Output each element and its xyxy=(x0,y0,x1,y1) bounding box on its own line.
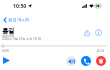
button[interactable]: Play xyxy=(0,54,13,67)
button[interactable]: Contact info xyxy=(94,28,103,37)
staticText: -0:14 xyxy=(96,48,104,53)
button[interactable]: 음성 메시지 xyxy=(0,15,31,24)
staticText: 0:00 xyxy=(2,48,9,53)
button[interactable]: Speaker xyxy=(66,56,76,66)
staticText: 2020년 9월 27일 오후 10:18 xyxy=(2,37,41,41)
button[interactable]: Share voicemail xyxy=(82,28,91,37)
staticText: 홍길 xyxy=(2,27,15,35)
staticText: 휴대전화 xyxy=(2,34,15,38)
staticText: 음성 메시지 xyxy=(8,17,31,23)
button[interactable]: Delete xyxy=(96,56,106,66)
button[interactable]: Call back xyxy=(81,56,91,66)
staticText: 10:50 xyxy=(13,2,27,9)
